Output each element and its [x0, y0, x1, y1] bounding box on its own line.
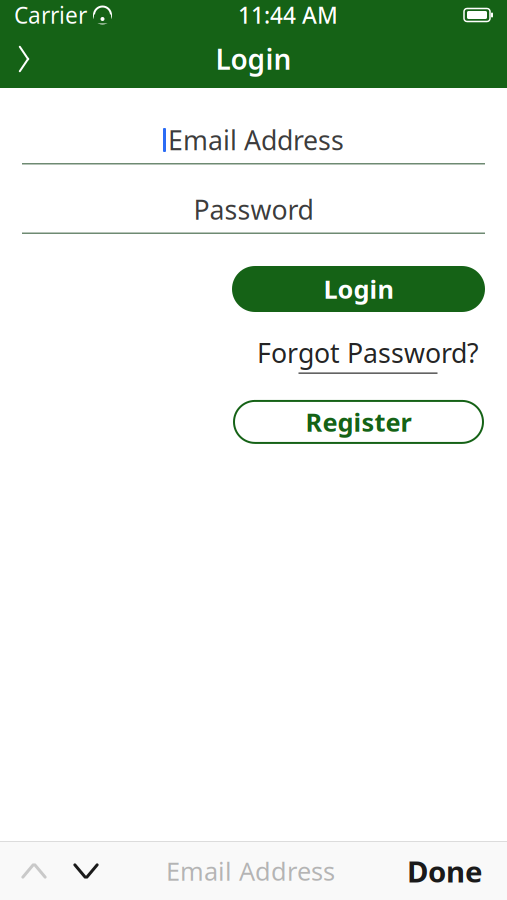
staticText: Carrier: [14, 0, 87, 30]
staticText: Login: [323, 272, 393, 306]
staticText: Email Address: [166, 854, 335, 888]
button[interactable]: Forgot Password?: [257, 335, 485, 374]
button[interactable]: Back: [0, 34, 48, 84]
staticText: Login: [215, 40, 291, 78]
button[interactable]: Register: [232, 399, 485, 445]
staticText: Password: [193, 192, 313, 227]
button[interactable]: Login: [232, 266, 485, 312]
staticText: Forgot Password?: [257, 335, 479, 370]
staticText: Register: [305, 405, 411, 439]
button[interactable]: Previous field: [8, 842, 60, 900]
staticText: Done: [407, 851, 483, 890]
staticText: 11:44 AM: [238, 0, 338, 30]
button[interactable]: Next field: [60, 842, 112, 900]
button[interactable]: Done: [389, 842, 501, 900]
staticText: Email Address: [168, 122, 344, 158]
